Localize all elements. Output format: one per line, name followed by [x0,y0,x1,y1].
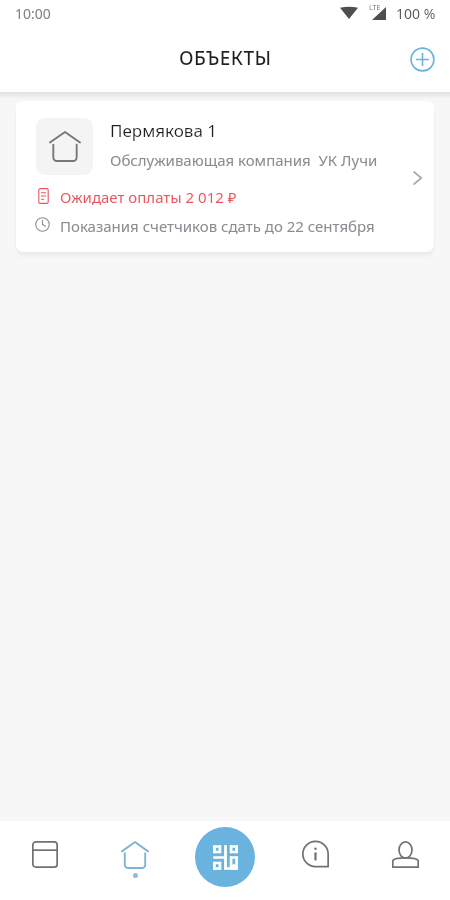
button[interactable]: Пермякова 1 [16,101,434,252]
button[interactable]: Информация [270,821,360,900]
button[interactable]: Добавить объект [399,36,445,82]
staticText: LTE [369,3,381,13]
staticText: 10:00 [15,4,51,23]
button[interactable]: Сканировать QR-код [195,827,255,887]
button[interactable]: Профиль [360,821,450,900]
staticText: 100 % [396,4,436,23]
button[interactable]: Платежи [0,821,90,900]
staticText: ОБЪЕКТЫ [179,45,272,71]
staticText: Обслуживающая компания УК Лучи [110,150,378,170]
staticText: Пермякова 1 [110,119,217,142]
button[interactable]: Главная [90,821,180,900]
staticText: Ожидает оплаты 2 012 ₽ [60,187,237,207]
staticText: Показания счетчиков сдать до 22 сентября [60,216,375,236]
